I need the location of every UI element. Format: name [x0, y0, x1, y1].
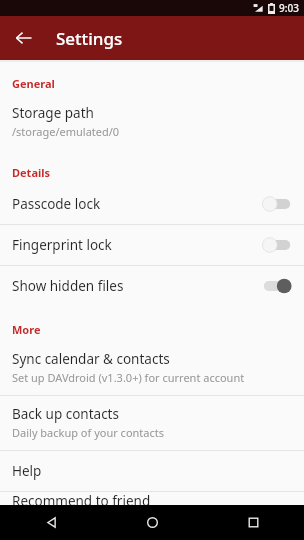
button[interactable]: Recents — [203, 505, 304, 540]
button[interactable]: Show hidden files — [0, 266, 304, 306]
button[interactable]: Help — [0, 451, 304, 491]
staticText: Storage path — [12, 104, 94, 122]
button[interactable]: Back up contacts — [0, 396, 304, 450]
staticText: Help — [12, 462, 42, 480]
button[interactable]: Home — [102, 505, 203, 540]
button[interactable]: Fingerprint lock — [0, 225, 304, 265]
staticText: More — [12, 322, 41, 337]
staticText: Passcode lock — [12, 195, 262, 213]
staticText: Recommend to friend — [12, 492, 151, 505]
button[interactable]: Storage path — [0, 95, 304, 149]
button[interactable]: Recommend to friend — [0, 492, 304, 505]
staticText: /storage/emulated/0 — [12, 124, 120, 139]
button[interactable]: Sync calendar & contacts — [0, 341, 304, 395]
staticText: General — [12, 76, 55, 91]
staticText: Daily backup of your contacts — [12, 425, 165, 440]
button[interactable]: Back — [6, 20, 42, 56]
staticText: 9:03 — [279, 1, 299, 15]
staticText: Settings — [56, 27, 123, 50]
button[interactable]: Passcode lock — [0, 184, 304, 224]
staticText: Details — [12, 165, 51, 180]
button[interactable]: Back — [0, 505, 102, 540]
staticText: Sync calendar & contacts — [12, 350, 170, 368]
staticText: Back up contacts — [12, 405, 119, 423]
staticText: Fingerprint lock — [12, 236, 262, 254]
staticText: Set up DAVdroid (v1.3.0+) for current ac… — [12, 370, 245, 385]
staticText: Show hidden files — [12, 277, 262, 295]
